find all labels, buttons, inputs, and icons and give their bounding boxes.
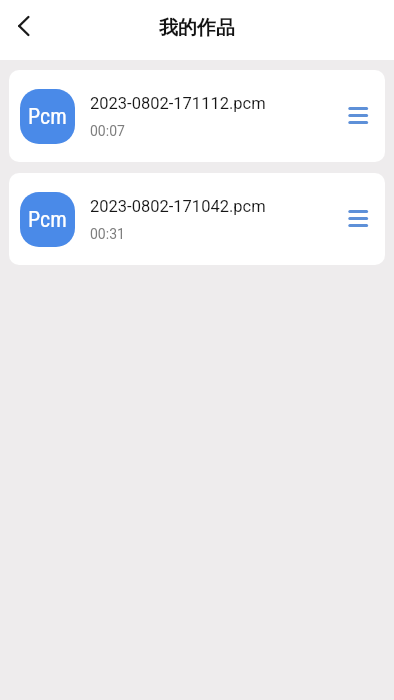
button[interactable]: Pcm	[9, 70, 385, 162]
staticText: 00:31	[90, 226, 125, 242]
button[interactable]: Back	[3, 5, 45, 47]
button[interactable]: More options	[337, 197, 381, 241]
staticText: Pcm	[28, 207, 67, 233]
staticText: 00:07	[90, 123, 125, 139]
staticText: 我的作品	[159, 16, 235, 40]
staticText: Pcm	[28, 104, 67, 130]
button[interactable]: Pcm	[9, 173, 385, 265]
staticText: 2023-0802-171112.pcm	[90, 94, 266, 113]
button[interactable]: More options	[337, 94, 381, 138]
staticText: 2023-0802-171042.pcm	[90, 197, 266, 216]
